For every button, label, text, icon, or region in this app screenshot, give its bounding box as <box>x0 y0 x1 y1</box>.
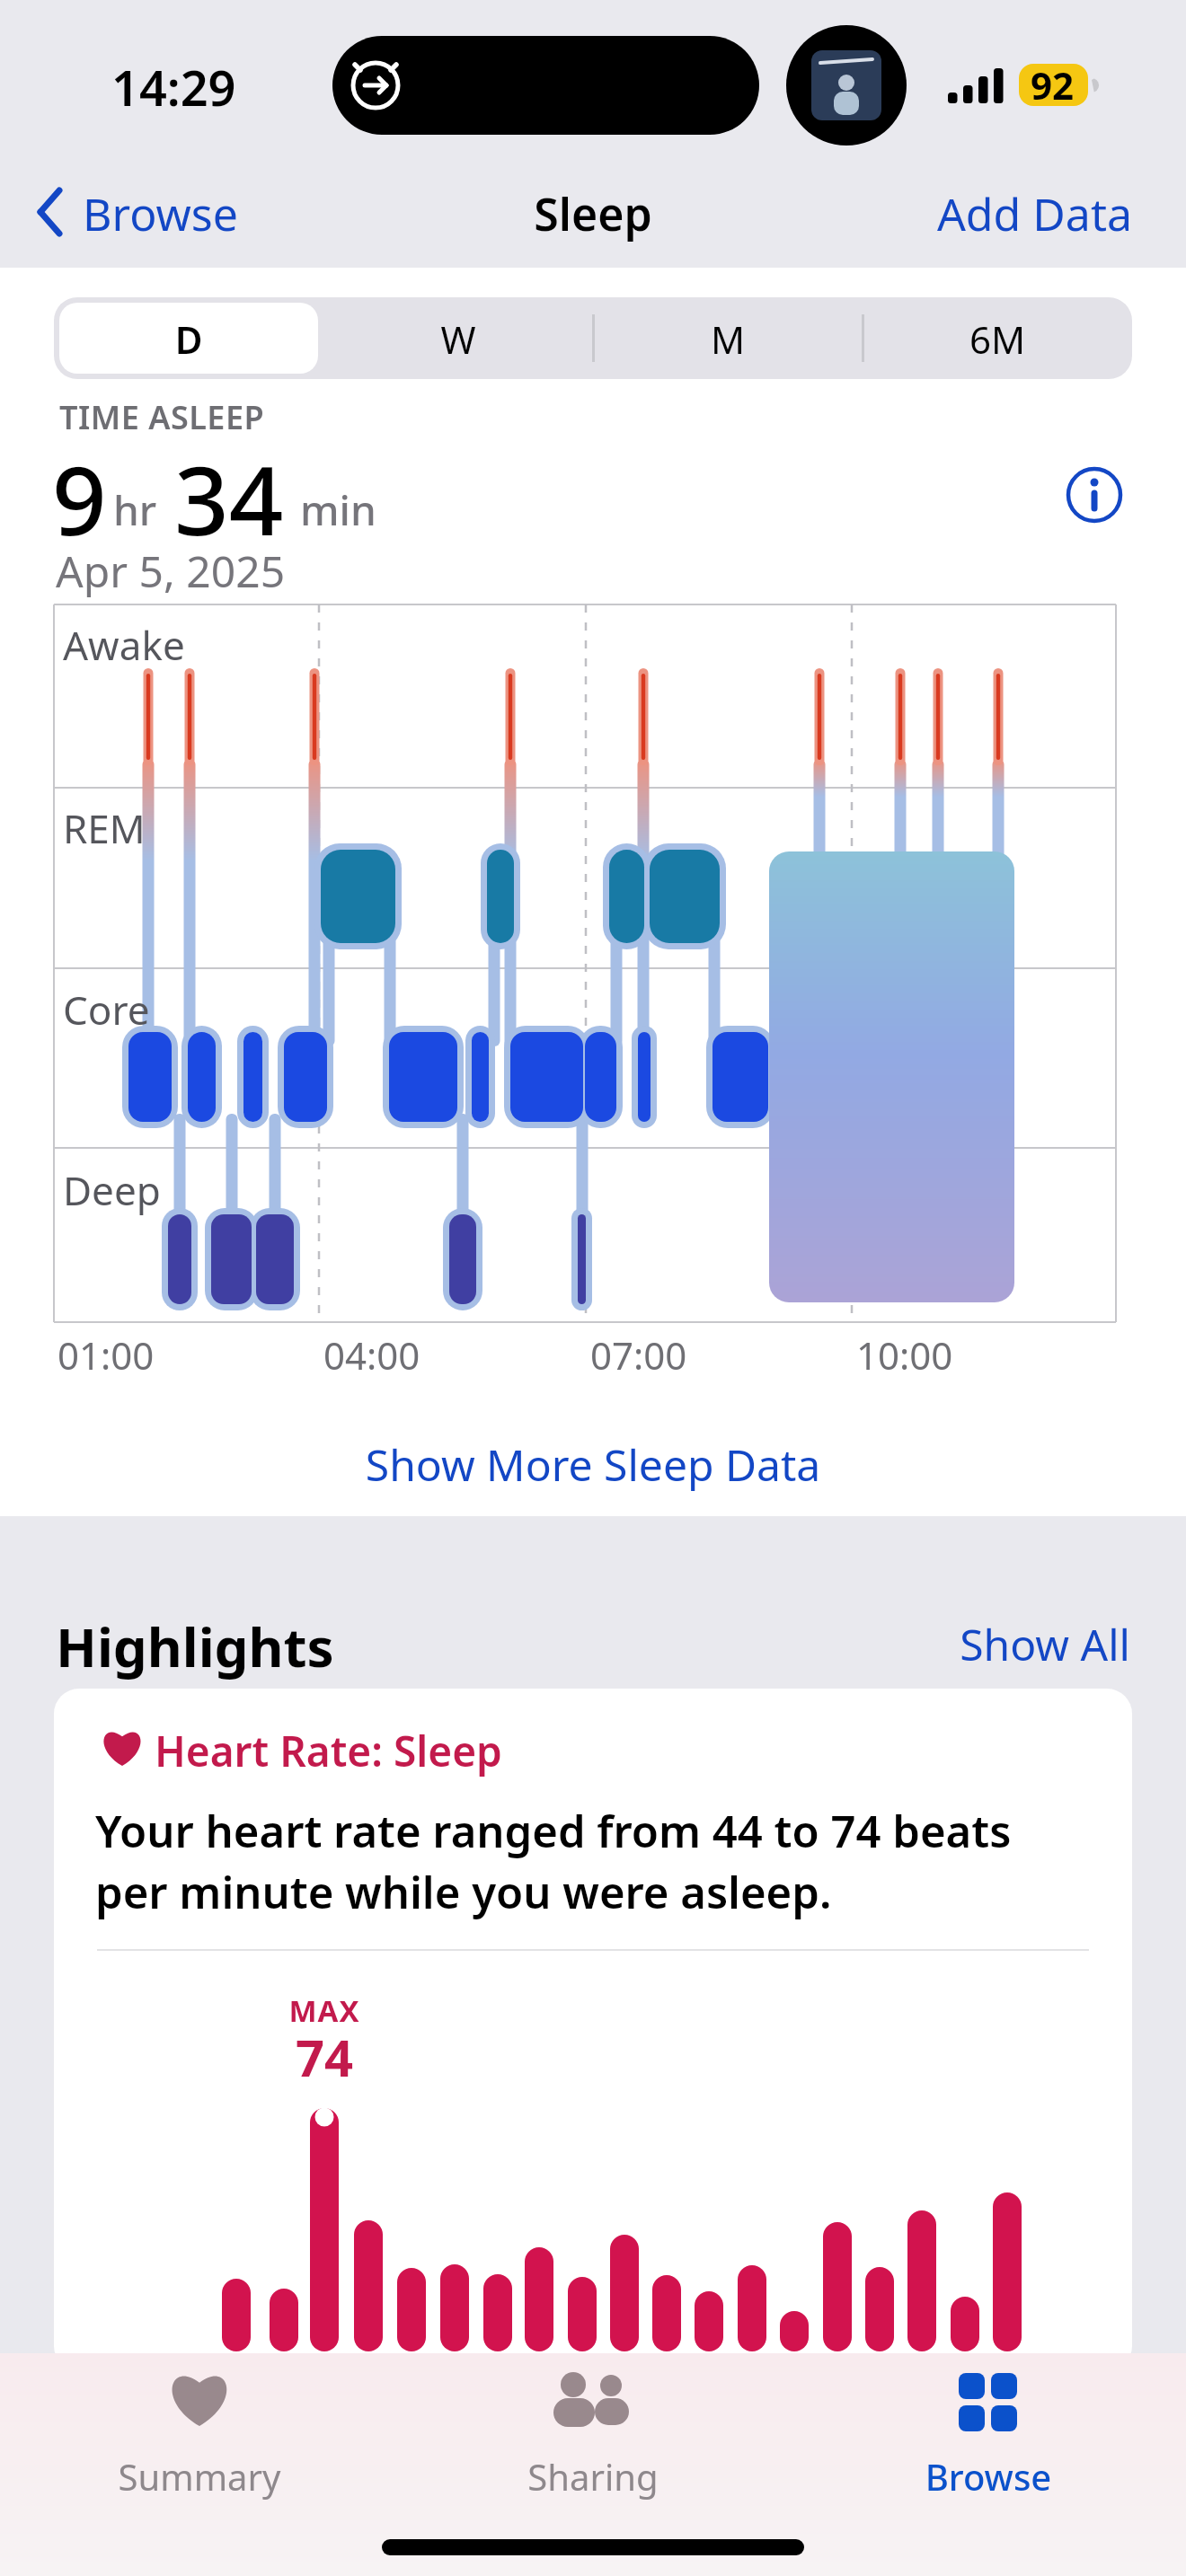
button[interactable]: Show More Sleep Data <box>0 1435 1186 1494</box>
staticText: 9 <box>52 434 107 563</box>
button[interactable]: Show All <box>861 1615 1130 1673</box>
staticText: 01:00 <box>58 1329 155 1381</box>
button[interactable] <box>54 1689 1132 2371</box>
staticText: Deep <box>63 1163 161 1217</box>
staticText: 6M <box>863 313 1132 365</box>
staticText: Show More Sleep Data <box>0 1435 1186 1494</box>
staticText: 14:29 <box>111 54 236 120</box>
staticText: Sharing <box>503 2452 683 2501</box>
button[interactable] <box>59 303 318 374</box>
staticText: Your heart rate ranged from 44 to 74 bea… <box>95 1801 1012 1861</box>
button[interactable]: Summary <box>110 2362 289 2497</box>
staticText: Browse <box>83 183 238 244</box>
staticText: Core <box>63 983 150 1037</box>
staticText: 07:00 <box>590 1329 687 1381</box>
staticText: Heart Rate: Sleep <box>155 1723 502 1779</box>
staticText: Awake <box>63 618 185 672</box>
staticText: M <box>593 313 863 365</box>
staticText: REM <box>63 801 146 855</box>
staticText: 34 <box>174 434 284 563</box>
staticText: 74 <box>252 2023 396 2091</box>
staticText: Apr 5, 2025 <box>56 542 286 600</box>
button[interactable]: M <box>593 313 863 365</box>
staticText: Add Data <box>916 183 1132 244</box>
button[interactable]: D <box>54 313 323 365</box>
button[interactable]: Browse <box>898 2362 1078 2497</box>
button[interactable]: Add Data <box>916 183 1132 244</box>
staticText: MAX <box>252 1990 396 2031</box>
staticText: 04:00 <box>323 1329 420 1381</box>
staticText: 10:00 <box>856 1329 953 1381</box>
staticText: Highlights <box>56 1610 334 1683</box>
staticText: Show All <box>861 1615 1130 1673</box>
button[interactable] <box>36 187 66 237</box>
staticText: hr <box>113 481 157 538</box>
staticText: 92 <box>1031 59 1075 110</box>
staticText: TIME ASLEEP <box>59 395 265 439</box>
button[interactable]: 6M <box>863 313 1132 365</box>
staticText: Browse <box>898 2452 1078 2501</box>
button[interactable]: W <box>323 313 593 365</box>
staticText: min <box>300 481 376 538</box>
button[interactable] <box>1065 465 1124 525</box>
button[interactable]: Sharing <box>503 2362 683 2497</box>
staticText: Summary <box>110 2452 289 2501</box>
staticText: D <box>54 313 323 365</box>
button[interactable]: Browse <box>83 183 238 244</box>
staticText: per minute while you were asleep. <box>95 1862 832 1922</box>
staticText: Sleep <box>0 183 1186 244</box>
staticText: W <box>323 313 593 365</box>
